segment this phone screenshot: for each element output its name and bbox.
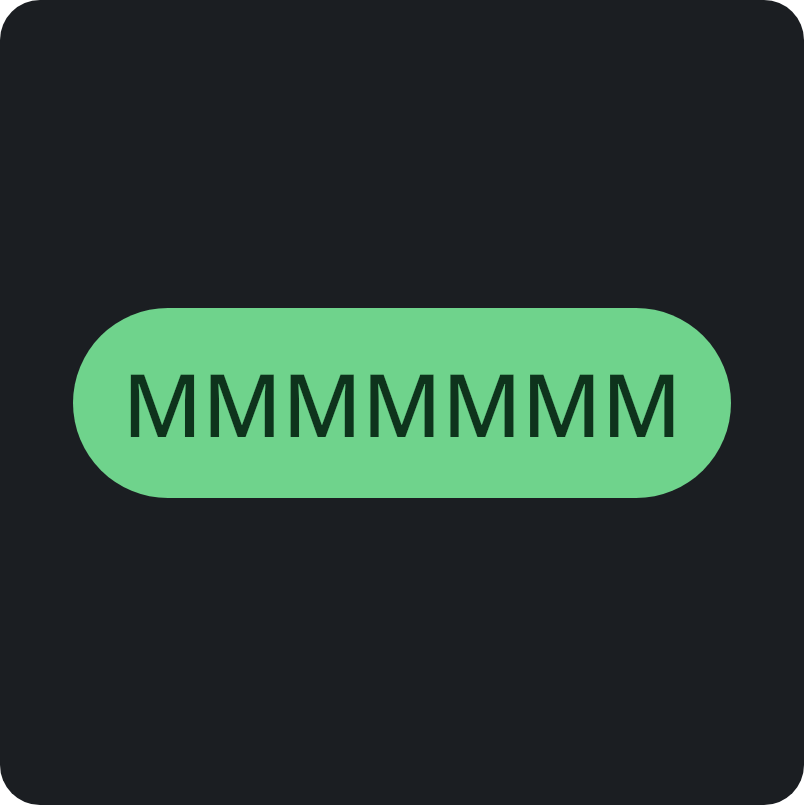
button[interactable]: MMMMMMM [73, 308, 731, 498]
staticText: MMMMMMM [122, 344, 682, 462]
